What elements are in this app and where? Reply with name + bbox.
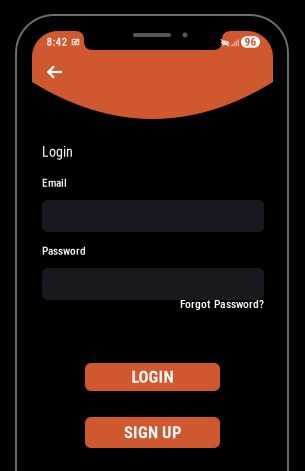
- button[interactable]: SIGN UP: [85, 417, 220, 448]
- staticText: 96: [244, 35, 256, 49]
- staticText: Login: [42, 144, 73, 160]
- button[interactable]: LOGIN: [85, 363, 220, 391]
- staticText: 8:42: [46, 35, 67, 49]
- staticText: LOGIN: [131, 367, 173, 387]
- button[interactable]: Forgot Password?: [42, 296, 264, 312]
- staticText: SIGN UP: [124, 423, 181, 442]
- staticText: Password: [42, 244, 86, 258]
- staticText: Forgot Password?: [180, 297, 264, 311]
- staticText: Email: [42, 176, 67, 190]
- button[interactable]: Back: [38, 57, 72, 87]
